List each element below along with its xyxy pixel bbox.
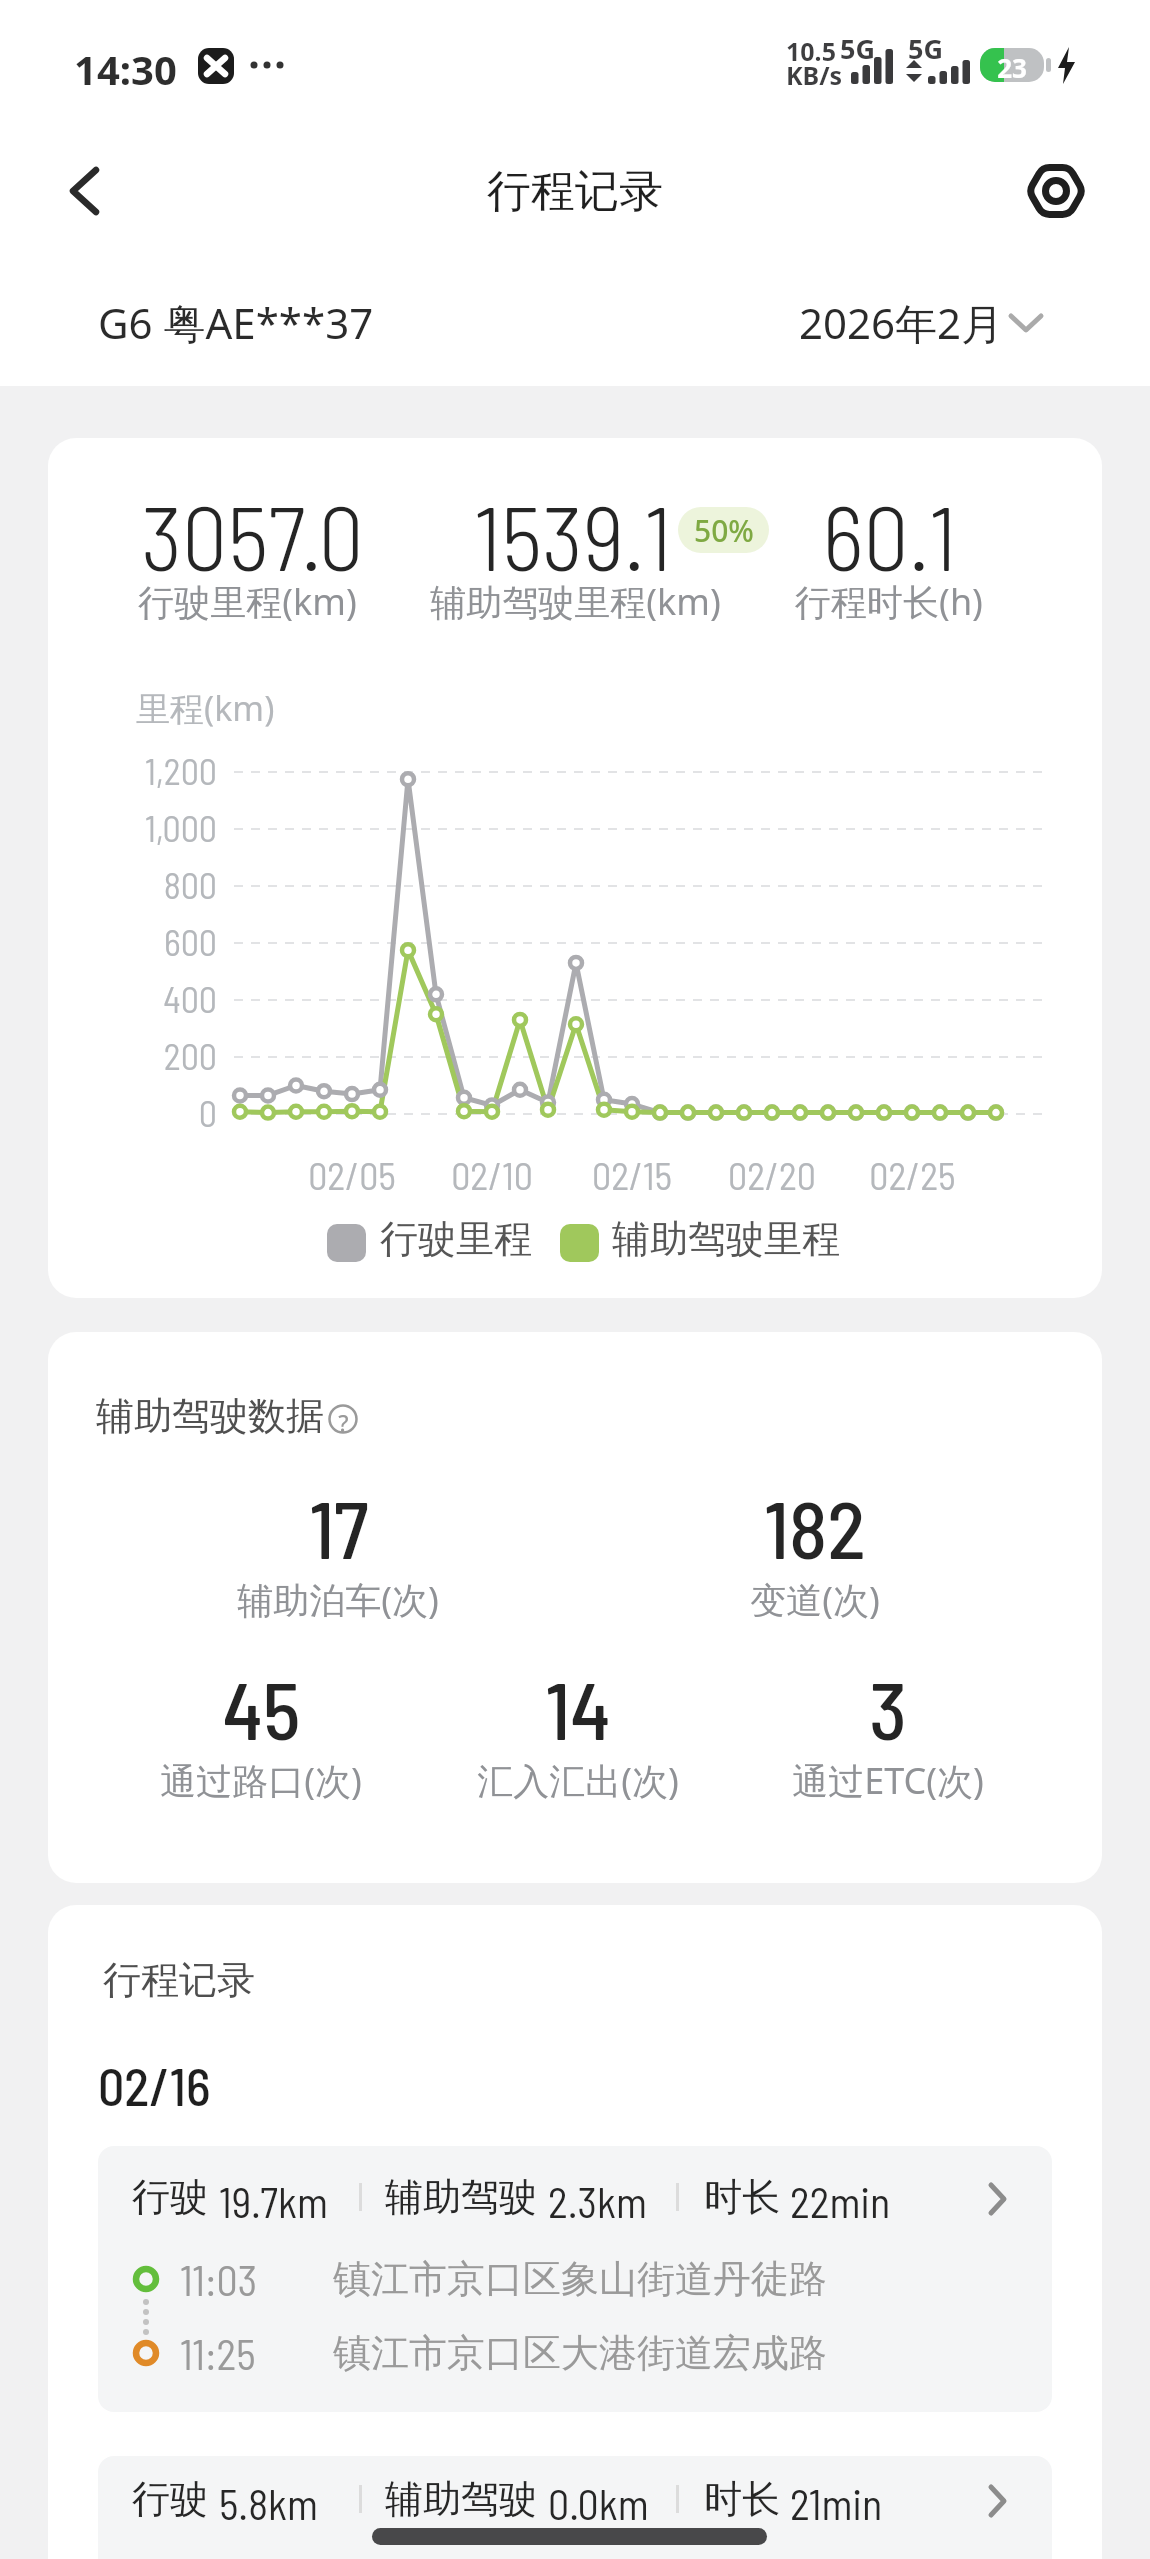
- staticText: 通过ETC(次): [792, 1756, 984, 1805]
- staticText: 行程记录: [487, 164, 663, 219]
- staticText: 3057.0: [141, 481, 364, 589]
- staticText: ?: [338, 1407, 349, 1438]
- button[interactable]: [1016, 153, 1092, 229]
- staticText: 11:25: [180, 2328, 256, 2378]
- staticText: 14:30: [74, 42, 177, 96]
- staticText: 辅助驾驶里程: [612, 1215, 840, 1263]
- staticText: 2026年2月: [799, 294, 1004, 351]
- staticText: 汇入汇出(次): [477, 1756, 679, 1805]
- staticText: 14: [545, 1660, 611, 1756]
- staticText: 50%: [694, 510, 754, 551]
- staticText: 02/20: [728, 1152, 816, 1198]
- staticText: 时长: [704, 2475, 780, 2523]
- button[interactable]: 行驶: [98, 2456, 1052, 2559]
- staticText: 60.1: [822, 481, 957, 589]
- staticText: 02/10: [451, 1152, 533, 1198]
- staticText: 1,200: [144, 749, 217, 792]
- staticText: 22min: [790, 2176, 891, 2226]
- staticText: 400: [163, 977, 217, 1020]
- staticText: 镇江市京口区象山街道丹徒路: [333, 2255, 827, 2303]
- staticText: 02/25: [869, 1152, 956, 1198]
- button[interactable]: 行驶: [98, 2146, 1052, 2412]
- staticText: 200: [163, 1034, 217, 1077]
- staticText: 辅助驾驶: [385, 2173, 537, 2221]
- staticText: 02/15: [592, 1152, 672, 1198]
- staticText: 5G: [840, 30, 875, 67]
- staticText: G6 粤AE***37: [98, 294, 374, 351]
- staticText: 时长: [704, 2173, 780, 2221]
- staticText: 11:03: [180, 2254, 258, 2304]
- staticText: 行程时长(h): [795, 577, 983, 626]
- staticText: 辅助驾驶里程(km): [430, 577, 721, 626]
- staticText: 里程(km): [136, 685, 275, 731]
- staticText: 行程记录: [103, 1956, 255, 2004]
- staticText: 3: [869, 1660, 907, 1756]
- staticText: 1539.1: [474, 481, 672, 589]
- staticText: 10.5: [786, 34, 836, 68]
- staticText: 变道(次): [750, 1575, 880, 1624]
- button[interactable]: 2026年2月: [780, 284, 1070, 354]
- staticText: 镇江市京口区大港街道宏成路: [333, 2329, 827, 2377]
- staticText: 辅助泊车(次): [237, 1575, 439, 1624]
- staticText: 辅助驾驶: [385, 2475, 537, 2523]
- staticText: 02/05: [308, 1152, 396, 1198]
- staticText: 45: [222, 1660, 301, 1756]
- staticText: 行驶里程: [380, 1215, 532, 1263]
- staticText: 5.8km: [219, 2478, 318, 2528]
- staticText: 辅助驾驶数据: [96, 1392, 324, 1440]
- staticText: 行驶里程(km): [138, 577, 357, 626]
- staticText: 21min: [790, 2478, 883, 2528]
- staticText: 行驶: [132, 2173, 208, 2221]
- button[interactable]: [56, 160, 120, 224]
- staticText: 0: [198, 1091, 217, 1134]
- staticText: KB/s: [786, 58, 843, 92]
- staticText: 19.7km: [219, 2176, 328, 2226]
- staticText: 行驶: [132, 2475, 208, 2523]
- staticText: 5G: [908, 30, 943, 67]
- staticText: 600: [164, 920, 217, 963]
- staticText: 1,000: [144, 806, 217, 849]
- staticText: 182: [764, 1479, 866, 1575]
- staticText: 通过路口(次): [160, 1756, 362, 1805]
- staticText: 0.0km: [548, 2478, 649, 2528]
- staticText: 800: [163, 863, 217, 906]
- staticText: 17: [309, 1479, 369, 1575]
- staticText: 2.3km: [548, 2176, 647, 2226]
- staticText: 02/16: [98, 2054, 211, 2116]
- staticText: 23: [997, 50, 1027, 85]
